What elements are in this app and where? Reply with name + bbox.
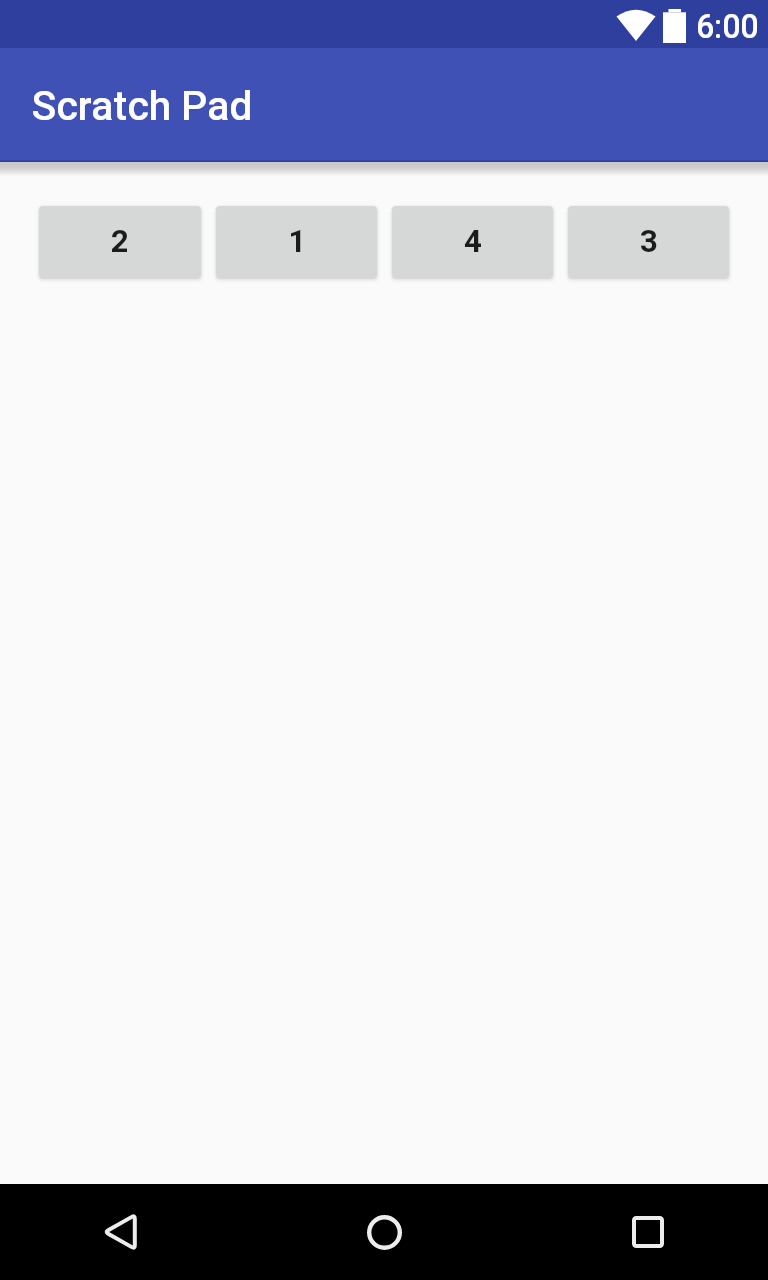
button[interactable]: 2 [39, 206, 201, 278]
button[interactable]: Back [72, 1184, 168, 1280]
button[interactable]: 3 [568, 206, 729, 278]
button[interactable]: 1 [216, 206, 377, 278]
staticText: 1 [288, 223, 306, 259]
button[interactable]: 4 [392, 206, 553, 278]
button[interactable]: Home [336, 1184, 432, 1280]
staticText: 4 [464, 223, 482, 259]
staticText: 2 [111, 223, 129, 259]
staticText: 3 [640, 223, 658, 259]
button[interactable]: Recent apps [600, 1184, 696, 1280]
staticText: 6:00 [696, 8, 758, 46]
staticText: Scratch Pad [32, 82, 253, 130]
